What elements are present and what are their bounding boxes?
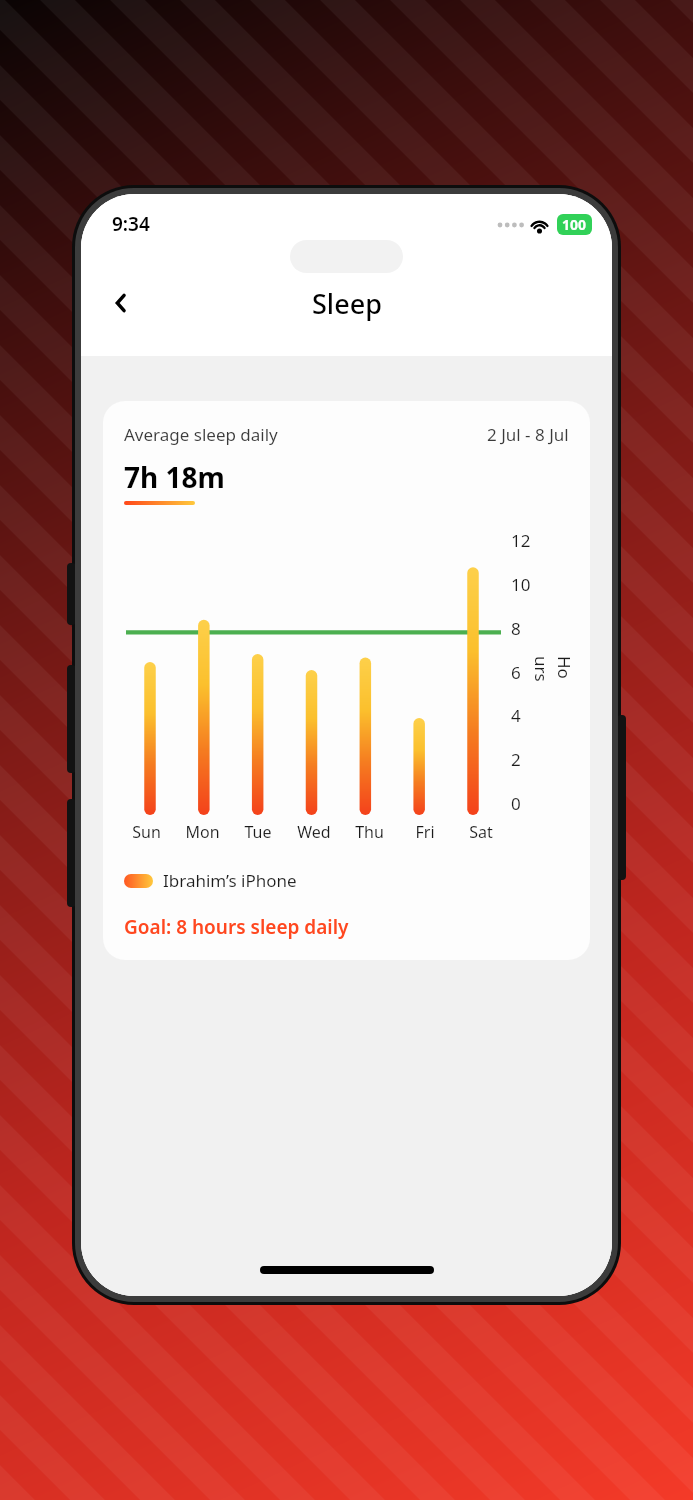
staticText: 0 bbox=[511, 792, 521, 815]
staticText: 12 bbox=[511, 529, 531, 552]
button[interactable]: Ibrahim’s iPhone bbox=[124, 869, 297, 892]
staticText: 8 bbox=[511, 617, 521, 640]
staticText: 7h 18m bbox=[124, 458, 225, 496]
staticText: Fri bbox=[415, 821, 435, 843]
staticText: Sun bbox=[132, 821, 161, 843]
staticText: 9:34 bbox=[112, 211, 150, 237]
staticText: 2 bbox=[511, 748, 521, 771]
button[interactable]: Average sleep daily bbox=[103, 401, 590, 960]
staticText: 4 bbox=[511, 704, 521, 727]
staticText: Thu bbox=[355, 821, 384, 843]
staticText: Ibrahim’s iPhone bbox=[163, 869, 297, 892]
staticText: 10 bbox=[511, 573, 531, 596]
staticText: 100 bbox=[562, 215, 587, 234]
staticText: Sleep bbox=[312, 285, 382, 322]
staticText: Sat bbox=[469, 821, 493, 843]
staticText: Wed bbox=[297, 821, 331, 843]
button[interactable]: Back bbox=[93, 275, 149, 331]
staticText: Hours bbox=[530, 656, 576, 688]
staticText: 2 Jul - 8 Jul bbox=[487, 423, 569, 446]
staticText: Goal: 8 hours sleep daily bbox=[124, 914, 349, 940]
staticText: 6 bbox=[511, 661, 521, 684]
staticText: Mon bbox=[185, 821, 220, 843]
staticText: Tue bbox=[244, 821, 272, 843]
staticText: Average sleep daily bbox=[124, 423, 278, 446]
